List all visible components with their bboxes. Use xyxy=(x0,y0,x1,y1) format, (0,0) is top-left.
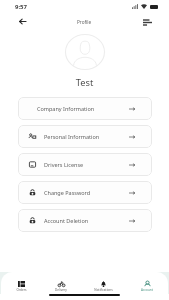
staticText: Profile xyxy=(77,19,92,25)
button[interactable]: Menu xyxy=(139,14,155,30)
button[interactable]: Delivery xyxy=(50,272,72,293)
staticText: Change Password xyxy=(44,189,91,196)
staticText: Delivery xyxy=(55,288,67,292)
staticText: Notifications xyxy=(94,288,113,292)
button[interactable]: Company Information xyxy=(18,97,152,120)
button[interactable]: Notifications xyxy=(89,272,118,293)
button[interactable]: Change Password xyxy=(18,181,152,204)
button[interactable]: Personal Information xyxy=(18,125,152,148)
staticText: 9:57 xyxy=(15,3,27,11)
button[interactable]: Drivers License xyxy=(18,153,152,176)
staticText: Account Deletion xyxy=(44,217,89,224)
staticText: Account xyxy=(141,288,153,292)
button[interactable]: Orders xyxy=(11,272,32,293)
button[interactable]: Back xyxy=(13,13,31,30)
staticText: Company Information xyxy=(37,105,95,112)
staticText: Drivers License xyxy=(44,161,84,168)
staticText: Test xyxy=(0,76,169,89)
staticText: Personal Information xyxy=(44,133,100,140)
button[interactable]: Account Deletion xyxy=(18,209,152,232)
button[interactable]: Account xyxy=(136,272,158,293)
staticText: Orders xyxy=(16,288,27,292)
